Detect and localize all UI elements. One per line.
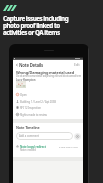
button[interactable]: Send comment	[74, 133, 81, 140]
staticText: Wrong/Damaging material used	[16, 70, 74, 75]
button[interactable]: RFI 12 Inspection	[16, 105, 86, 110]
staticText: Note (copy) redirect	[20, 145, 46, 149]
staticText: Note created	[20, 148, 36, 152]
staticText: 6 Mar 2024 14:01	[59, 145, 79, 148]
staticText: Lucy Hampton	[16, 78, 36, 82]
staticText: Note Details	[19, 62, 43, 68]
button[interactable]: Photo attachment	[16, 81, 26, 88]
staticText: Open	[20, 93, 27, 97]
staticText: Do sit amet consectetur adipiscing elit …	[16, 74, 82, 78]
staticText: Capture issues including photo proof lin…	[3, 14, 69, 36]
staticText: RFI 12 Inspection	[20, 106, 41, 110]
button[interactable]: Back	[14, 60, 20, 69]
staticText: Add a comment	[19, 134, 40, 138]
staticText: Building 1 / Level 2 / Apt 203B	[20, 100, 57, 104]
button[interactable]: Edit	[74, 62, 83, 68]
button[interactable]: Add a comment	[16, 132, 73, 140]
button[interactable]: Open	[16, 92, 86, 97]
staticText: Note Timeline	[16, 125, 40, 130]
button[interactable]: Building 1 / Level 2 / Apt 203B	[16, 99, 86, 104]
button[interactable]: Rights made to review	[16, 112, 86, 117]
staticText: Rights made to review	[20, 113, 47, 117]
